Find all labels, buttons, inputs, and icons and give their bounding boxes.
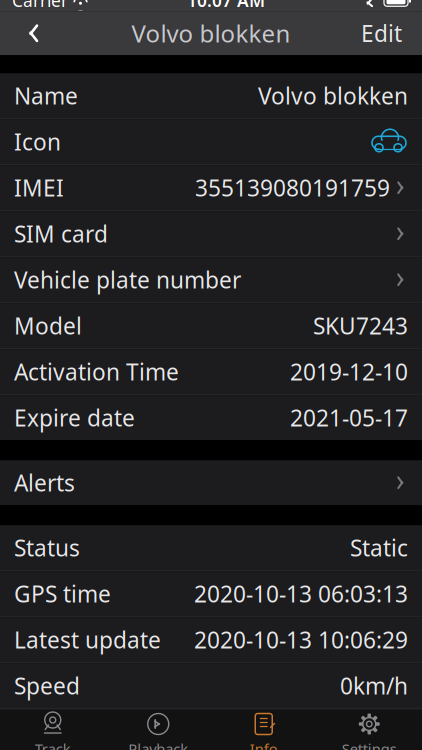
staticText: Vehicle plate number [14,265,241,295]
staticText: Status [14,533,80,563]
button[interactable]: IMEI [0,165,422,210]
button[interactable]: Edit [355,13,408,53]
staticText: 2021-05-17 [290,403,408,433]
staticText: SKU7243 [313,311,408,341]
staticText: 2020-10-13 06:03:13 [194,579,408,609]
button[interactable]: Expire date [0,395,422,440]
button[interactable]: Model [0,303,422,348]
button[interactable]: Info [211,710,316,750]
button[interactable]: Track [0,710,105,750]
staticText: SIM card [14,219,108,249]
staticText: Speed [14,671,80,701]
staticText: Model [14,311,82,341]
button[interactable]: Vehicle plate number [0,257,422,302]
button[interactable]: SIM card [0,211,422,256]
staticText: Info [250,739,278,750]
staticText: IMEI [14,173,64,203]
staticText: Volvo blokken [258,81,408,111]
staticText: Volvo blokken [131,17,290,49]
staticText: 2020-10-13 10:06:29 [194,625,408,655]
button[interactable]: Status [0,525,422,570]
staticText: Track [35,739,71,750]
staticText: Playback [128,739,188,750]
button[interactable]: Settings [316,710,422,750]
staticText: 10:07 AM [187,0,265,12]
button[interactable]: Alerts [0,460,422,505]
button[interactable]: Name [0,73,422,118]
staticText: Carrier [12,0,68,12]
button[interactable]: Icon [0,119,422,164]
staticText: Alerts [14,468,75,498]
button[interactable]: Back [14,13,48,53]
staticText: 2019-12-10 [290,357,408,387]
button[interactable]: Playback [105,710,211,750]
staticText: Name [14,81,78,111]
staticText: Settings [342,739,397,750]
staticText: Expire date [14,403,135,433]
staticText: 0km/h [340,671,408,701]
button[interactable]: Activation Time [0,349,422,394]
staticText: 355139080191759 [195,173,390,203]
button[interactable]: Latest update [0,617,422,662]
button[interactable]: GPS time [0,571,422,616]
staticText: GPS time [14,579,111,609]
staticText: Edit [361,18,402,48]
button[interactable]: Speed [0,663,422,708]
staticText: Latest update [14,625,161,655]
staticText: Activation Time [14,357,179,387]
staticText: Static [350,533,408,563]
staticText: Icon [14,127,61,157]
